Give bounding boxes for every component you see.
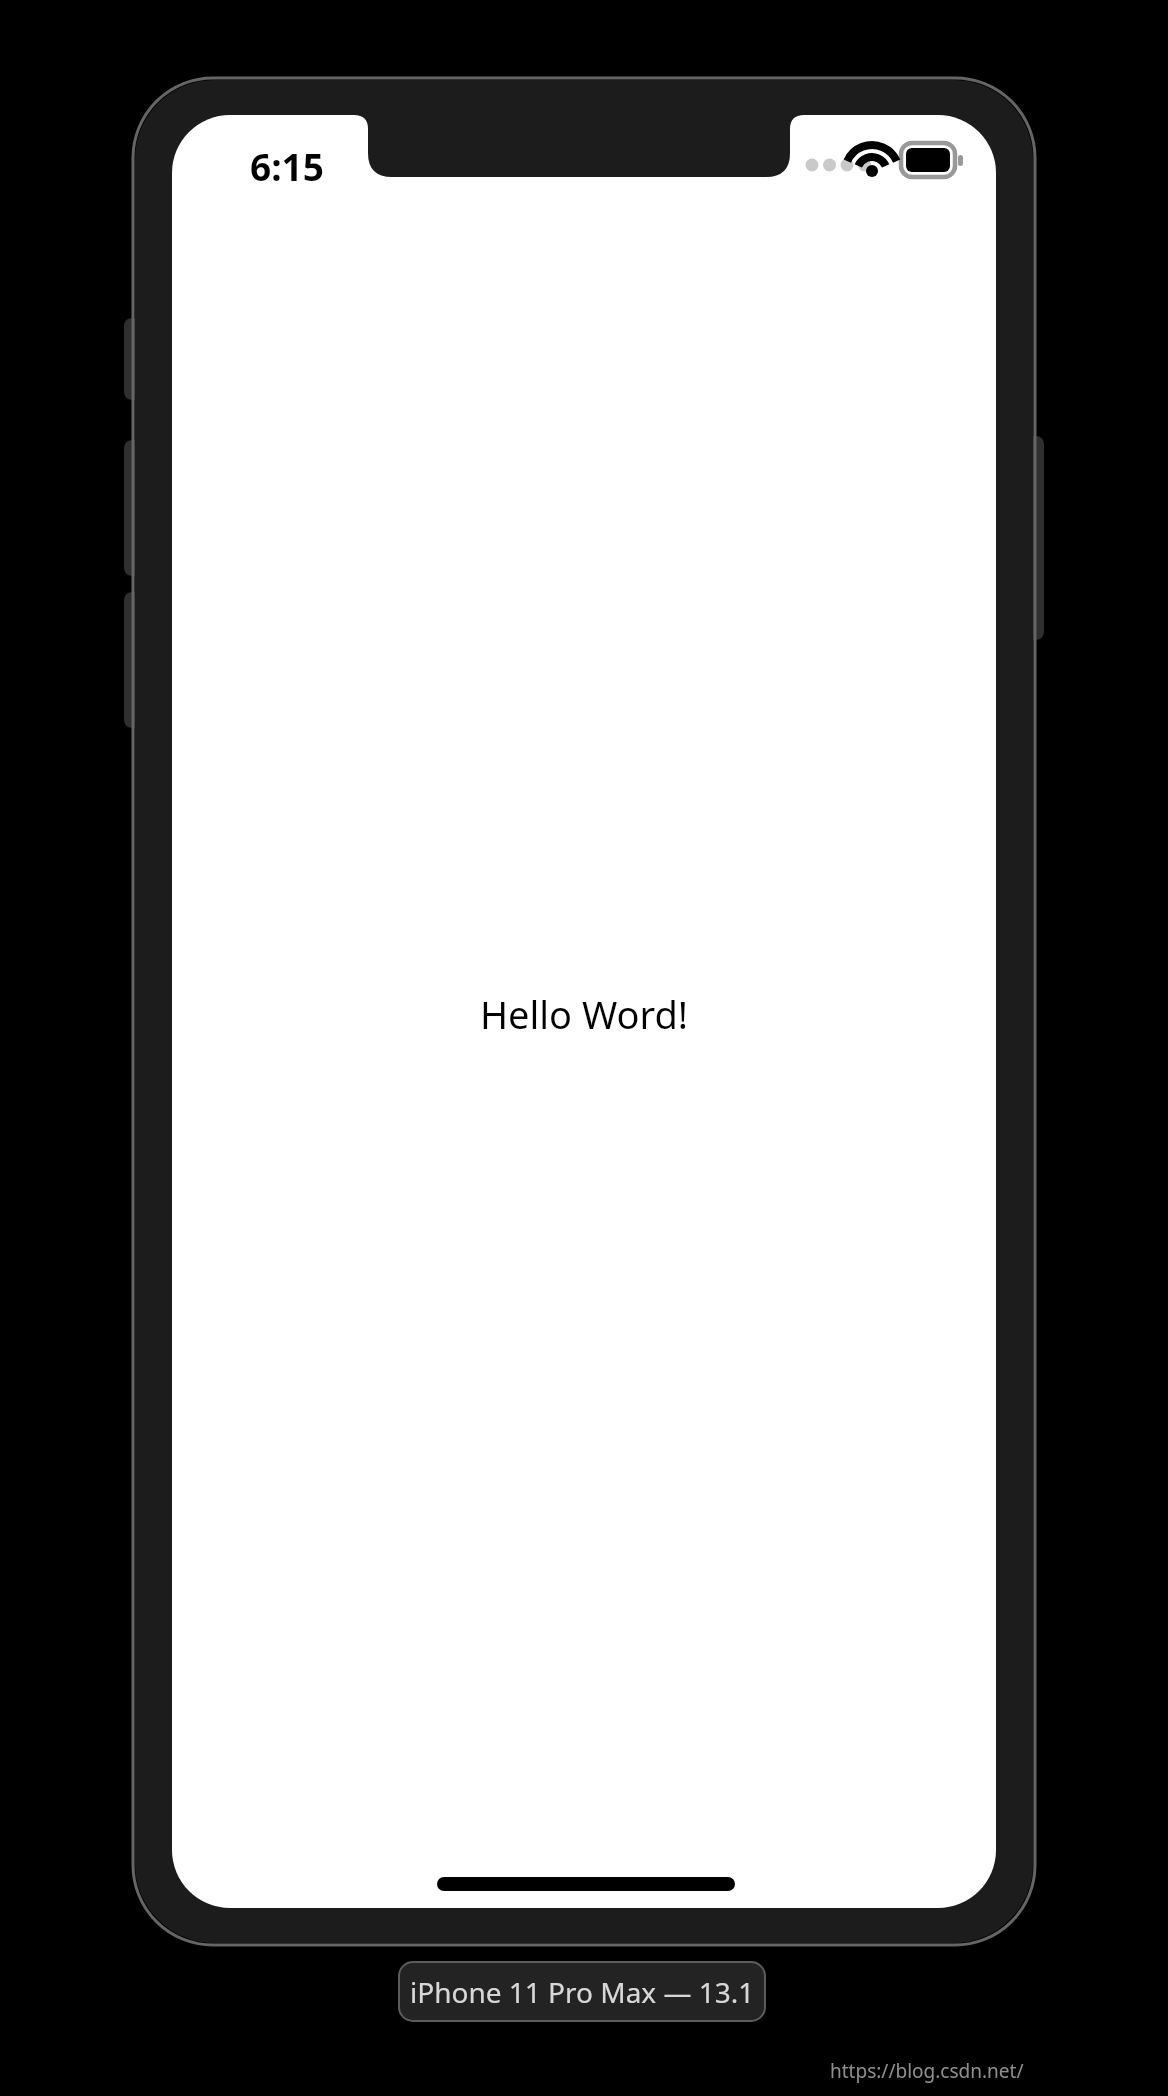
button[interactable]: Hello Word! (172, 988, 996, 1044)
staticText: https://blog.csdn.net/weixin_44888382 (830, 2058, 1155, 2086)
staticText: 6:15 (250, 141, 324, 191)
button[interactable]: iPhone 11 Pro Max — 13.1 (399, 1962, 765, 2021)
staticText: iPhone 11 Pro Max — 13.1 (410, 1973, 755, 2011)
